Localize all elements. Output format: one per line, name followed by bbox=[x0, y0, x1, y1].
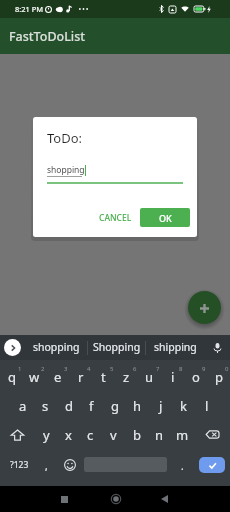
staticText: s bbox=[42, 397, 49, 415]
staticText: 0 bbox=[225, 365, 229, 373]
staticText: 3 bbox=[64, 365, 68, 373]
staticText: p bbox=[215, 368, 223, 386]
button[interactable]: k bbox=[172, 391, 195, 420]
button[interactable]: h bbox=[126, 391, 149, 420]
staticText: u bbox=[145, 368, 154, 386]
button[interactable]: i bbox=[161, 362, 184, 391]
staticText: 2 bbox=[41, 365, 45, 373]
button[interactable]: a bbox=[12, 391, 34, 420]
staticText: shopping bbox=[33, 340, 80, 354]
button[interactable]: Add todo bbox=[188, 291, 221, 324]
staticText: shopping bbox=[47, 164, 85, 176]
button[interactable]: shopping bbox=[26, 335, 87, 360]
button[interactable]: l bbox=[195, 391, 218, 420]
staticText: ToDo: bbox=[47, 129, 83, 147]
staticText: 1 bbox=[18, 365, 22, 373]
button[interactable]: CANCEL bbox=[93, 208, 138, 227]
button[interactable]: d bbox=[57, 391, 80, 420]
staticText: h bbox=[133, 397, 142, 415]
staticText: 6 bbox=[133, 365, 137, 373]
staticText: shipping bbox=[154, 340, 197, 354]
button[interactable]: OK bbox=[140, 208, 190, 227]
staticText: 8:21 PM bbox=[15, 4, 44, 14]
staticText: q bbox=[8, 368, 16, 386]
staticText: 4 bbox=[87, 365, 91, 373]
button[interactable]: e bbox=[46, 362, 69, 391]
button[interactable]: Shopping bbox=[88, 335, 145, 360]
staticText: z bbox=[123, 368, 130, 386]
button[interactable]: , bbox=[37, 449, 56, 478]
button[interactable]: Emoji bbox=[57, 449, 82, 478]
staticText: k bbox=[180, 397, 187, 415]
button[interactable]: u bbox=[138, 362, 161, 391]
staticText: n bbox=[155, 426, 164, 444]
staticText: 7 bbox=[156, 365, 160, 373]
button[interactable]: g bbox=[103, 391, 126, 420]
button[interactable]: m bbox=[171, 420, 194, 449]
staticText: l bbox=[205, 397, 209, 415]
staticText: x bbox=[65, 426, 72, 444]
staticText: ?123 bbox=[10, 459, 29, 471]
staticText: . bbox=[181, 459, 184, 473]
staticText: j bbox=[159, 397, 163, 415]
staticText: y bbox=[43, 426, 50, 444]
button[interactable]: j bbox=[149, 391, 172, 420]
staticText: CANCEL bbox=[99, 212, 132, 224]
staticText: a bbox=[19, 397, 27, 415]
button[interactable]: Back bbox=[144, 486, 185, 512]
button[interactable]: Recents bbox=[44, 486, 85, 512]
staticText: FastToDoList bbox=[9, 28, 86, 45]
staticText: t bbox=[101, 368, 106, 386]
staticText: OK bbox=[159, 212, 172, 224]
staticText: 5 bbox=[110, 365, 114, 373]
button[interactable]: y bbox=[35, 420, 57, 449]
staticText: d bbox=[65, 397, 73, 415]
staticText: f bbox=[89, 397, 94, 415]
button[interactable]: b bbox=[125, 420, 148, 449]
button[interactable]: s bbox=[34, 391, 57, 420]
staticText: , bbox=[45, 459, 48, 473]
button[interactable]: f bbox=[80, 391, 103, 420]
staticText: w bbox=[29, 368, 40, 386]
button[interactable]: Backspace bbox=[194, 420, 230, 449]
staticText: g bbox=[111, 397, 119, 415]
button[interactable]: Home bbox=[95, 486, 136, 512]
staticText: b bbox=[133, 426, 141, 444]
staticText: v bbox=[110, 426, 117, 444]
staticText: Shopping bbox=[93, 340, 141, 354]
staticText: o bbox=[192, 368, 200, 386]
staticText: 9 bbox=[202, 365, 206, 373]
button[interactable]: shipping bbox=[146, 335, 204, 360]
button[interactable]: More suggestions bbox=[4, 339, 21, 356]
button[interactable]: ?123 bbox=[2, 449, 37, 478]
button[interactable]: Shift bbox=[0, 420, 35, 449]
button[interactable]: p bbox=[207, 362, 230, 391]
button[interactable]: v bbox=[102, 420, 125, 449]
button[interactable]: Enter bbox=[199, 457, 225, 473]
button[interactable]: c bbox=[79, 420, 102, 449]
staticText: i bbox=[171, 368, 175, 386]
staticText: e bbox=[54, 368, 62, 386]
button[interactable]: n bbox=[148, 420, 171, 449]
button[interactable]: o bbox=[184, 362, 207, 391]
staticText: c bbox=[87, 426, 94, 444]
button[interactable]: r bbox=[69, 362, 92, 391]
button[interactable]: t bbox=[92, 362, 115, 391]
staticText: r bbox=[78, 368, 84, 386]
button[interactable]: Voice input bbox=[204, 335, 230, 360]
button[interactable]: w bbox=[23, 362, 46, 391]
button[interactable]: z bbox=[115, 362, 138, 391]
button[interactable]: x bbox=[57, 420, 79, 449]
staticText: 8 bbox=[179, 365, 183, 373]
button[interactable]: q bbox=[0, 362, 23, 391]
staticText: m bbox=[176, 426, 189, 444]
button[interactable]: . bbox=[172, 449, 193, 478]
